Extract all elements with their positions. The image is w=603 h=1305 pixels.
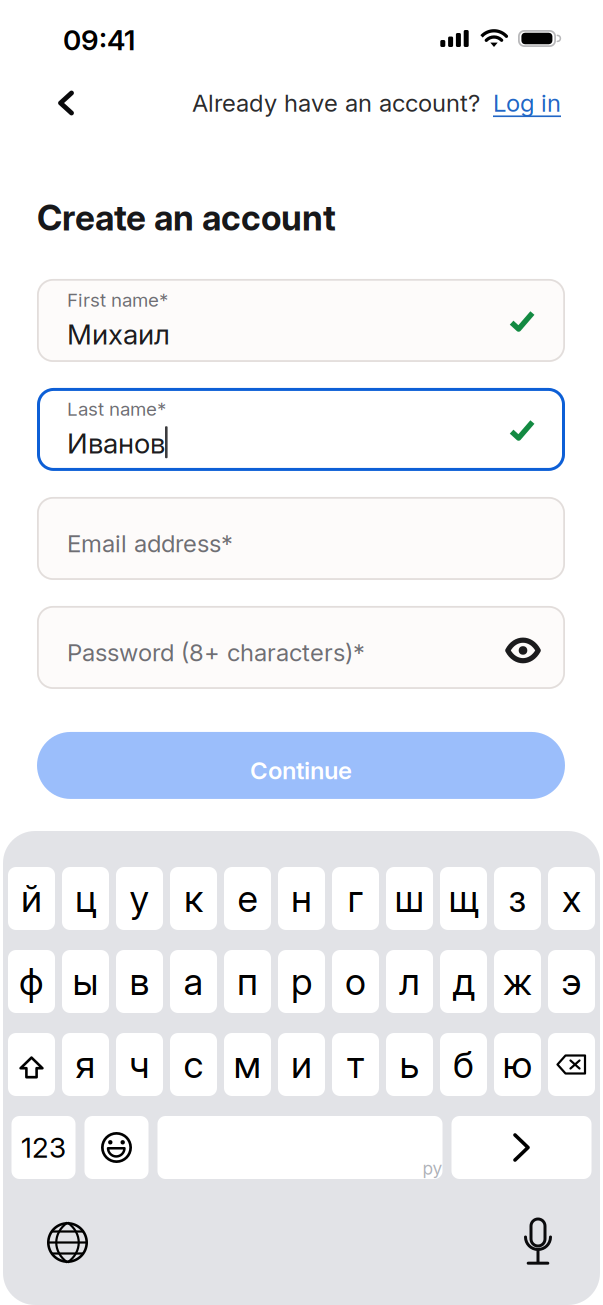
button[interactable]: ш — [386, 867, 433, 930]
button[interactable]: ф — [8, 950, 55, 1013]
staticText: а — [183, 959, 203, 1004]
staticText: 123 — [21, 1131, 66, 1164]
button[interactable]: Continue — [37, 732, 565, 799]
button[interactable]: м — [224, 1033, 271, 1096]
staticText: д — [452, 959, 474, 1004]
button[interactable]: Delete — [548, 1033, 595, 1096]
button[interactable]: у — [116, 867, 163, 930]
button[interactable]: Password (8+ characters)* — [37, 606, 565, 689]
button[interactable]: э — [548, 950, 595, 1013]
button[interactable]: а — [170, 950, 217, 1013]
staticText: Иванов — [67, 426, 165, 460]
staticText: ь — [399, 1042, 419, 1087]
button[interactable]: ц — [62, 867, 109, 930]
staticText: з — [508, 876, 526, 921]
button[interactable]: з — [494, 867, 541, 930]
button[interactable]: щ — [440, 867, 487, 930]
staticText: г — [347, 876, 363, 921]
staticText: Email address* — [67, 529, 233, 558]
button[interactable]: Email address* — [37, 497, 565, 580]
staticText: ш — [394, 876, 424, 921]
staticText: Create an account — [37, 197, 336, 239]
button[interactable]: и — [278, 1033, 325, 1096]
staticText: о — [345, 959, 366, 1004]
button[interactable]: т — [332, 1033, 379, 1096]
button[interactable]: ч — [116, 1033, 163, 1096]
staticText: щ — [448, 876, 478, 921]
button[interactable]: Emoji — [84, 1116, 148, 1179]
staticText: л — [399, 959, 420, 1004]
staticText: б — [453, 1042, 474, 1087]
button[interactable]: я — [62, 1033, 109, 1096]
button[interactable]: Last name* — [37, 388, 565, 471]
button[interactable]: Log in — [493, 80, 561, 125]
staticText: ж — [503, 959, 532, 1004]
staticText: ю — [502, 1042, 532, 1087]
staticText: ру — [422, 1158, 442, 1179]
button[interactable]: ж — [494, 950, 541, 1013]
button[interactable]: н — [278, 867, 325, 930]
staticText: й — [21, 876, 42, 921]
button[interactable]: Return — [451, 1116, 591, 1179]
button[interactable]: д — [440, 950, 487, 1013]
staticText: я — [75, 1042, 95, 1087]
button[interactable]: ы — [62, 950, 109, 1013]
staticText: п — [237, 959, 258, 1004]
staticText: в — [129, 959, 149, 1004]
button[interactable]: х — [548, 867, 595, 930]
staticText: Already have an account? — [192, 88, 480, 117]
staticText: Михаил — [67, 317, 170, 351]
staticText: е — [237, 876, 257, 921]
staticText: т — [347, 1042, 364, 1087]
staticText: 09:41 — [63, 23, 135, 57]
staticText: к — [184, 876, 203, 921]
button[interactable]: в — [116, 950, 163, 1013]
button[interactable]: с — [170, 1033, 217, 1096]
button[interactable]: о — [332, 950, 379, 1013]
staticText: ц — [75, 876, 96, 921]
button[interactable]: Shift — [8, 1033, 55, 1096]
button[interactable]: Back — [0, 73, 100, 132]
button[interactable]: п — [224, 950, 271, 1013]
button[interactable]: л — [386, 950, 433, 1013]
button[interactable]: Next keyboard — [41, 1216, 94, 1269]
staticText: х — [562, 876, 581, 921]
staticText: Log in — [493, 88, 561, 117]
staticText: ч — [129, 1042, 150, 1087]
staticText: ф — [19, 959, 44, 1004]
button[interactable]: к — [170, 867, 217, 930]
button[interactable]: е — [224, 867, 271, 930]
button[interactable]: б — [440, 1033, 487, 1096]
staticText: у — [129, 876, 149, 921]
staticText: Last name* — [67, 398, 166, 420]
staticText: ы — [72, 959, 98, 1004]
staticText: м — [233, 1042, 261, 1087]
staticText: н — [291, 876, 312, 921]
button[interactable]: г — [332, 867, 379, 930]
button[interactable]: й — [8, 867, 55, 930]
staticText: р — [291, 959, 312, 1004]
button[interactable]: Dictate — [514, 1212, 562, 1273]
staticText: и — [291, 1042, 312, 1087]
button[interactable]: р — [278, 950, 325, 1013]
button[interactable]: First name* — [37, 279, 565, 362]
staticText: э — [561, 959, 581, 1004]
button[interactable]: ю — [494, 1033, 541, 1096]
button[interactable]: ру — [157, 1116, 442, 1179]
staticText: Continue — [250, 756, 352, 785]
staticText: с — [183, 1042, 203, 1087]
staticText: Password (8+ characters)* — [67, 638, 365, 667]
staticText: First name* — [67, 289, 168, 311]
button[interactable]: ь — [386, 1033, 433, 1096]
button[interactable]: 123 — [11, 1116, 75, 1179]
